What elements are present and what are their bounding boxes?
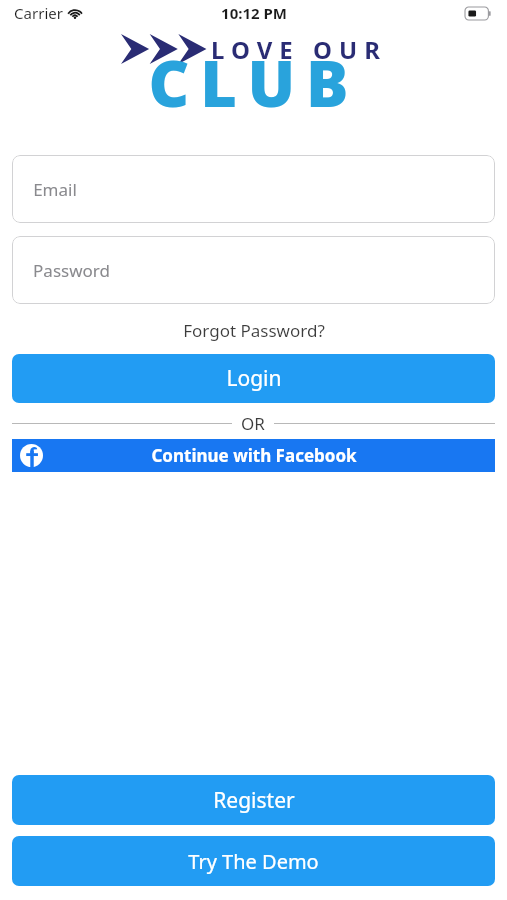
staticText: LOVE OUR	[211, 33, 387, 66]
staticText: Login	[226, 364, 282, 393]
staticText: Continue with Facebook	[151, 444, 357, 467]
staticText: Forgot Password?	[183, 319, 325, 342]
button[interactable]: Forgot Password?	[0, 316, 507, 345]
staticText: CLUB	[148, 40, 360, 126]
button[interactable]: Register	[12, 775, 495, 825]
button[interactable]: Email	[12, 155, 495, 223]
button[interactable]: Password	[12, 236, 495, 304]
button[interactable]: Try The Demo	[12, 836, 495, 886]
button[interactable]: Login	[12, 354, 495, 403]
staticText: Try The Demo	[188, 848, 319, 875]
staticText: Register	[213, 786, 295, 815]
other: Facebook	[20, 444, 43, 467]
staticText: 10:12 PM	[221, 3, 287, 23]
staticText: Email	[33, 178, 77, 201]
staticText: Carrier	[14, 3, 63, 23]
staticText: OR	[241, 412, 265, 435]
button[interactable]: Continue with Facebook	[12, 439, 495, 472]
staticText: Password	[33, 259, 110, 282]
